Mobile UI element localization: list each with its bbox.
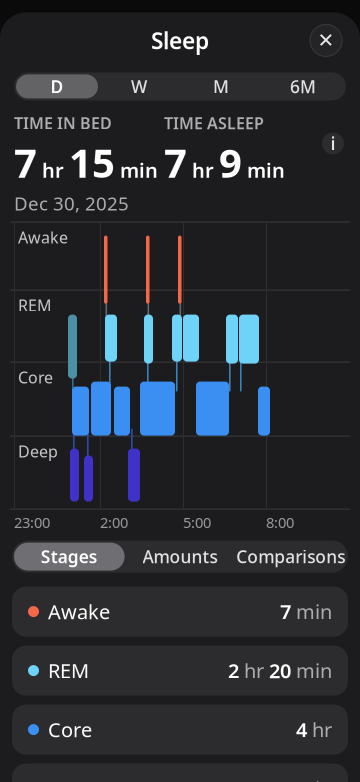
staticText: 15 bbox=[69, 136, 115, 189]
button[interactable]: 6M bbox=[262, 74, 344, 98]
staticText: D bbox=[50, 75, 63, 98]
staticText: min bbox=[291, 657, 332, 684]
staticText: min bbox=[291, 598, 332, 625]
staticText: M bbox=[213, 75, 229, 98]
button[interactable]: Amounts bbox=[125, 543, 235, 571]
staticText: REM bbox=[18, 295, 52, 316]
staticText: Awake bbox=[48, 598, 110, 625]
button[interactable]: Close bbox=[306, 20, 346, 60]
staticText: Awake bbox=[18, 227, 68, 248]
staticText: 4 bbox=[296, 716, 307, 743]
button[interactable]: W bbox=[98, 74, 180, 98]
staticText: hr bbox=[37, 157, 69, 183]
button[interactable]: REM bbox=[12, 646, 348, 696]
staticText: 6M bbox=[290, 75, 316, 98]
staticText: 7 bbox=[14, 136, 37, 189]
staticText: i bbox=[330, 132, 335, 155]
staticText: 8:00 bbox=[266, 513, 294, 532]
button[interactable]: Awake bbox=[12, 587, 348, 637]
staticText: Dec 30, 2025 bbox=[14, 191, 129, 216]
staticText: 2 bbox=[228, 657, 239, 684]
staticText: W bbox=[131, 75, 147, 98]
staticText: min bbox=[242, 157, 285, 183]
button[interactable]: Comparisons bbox=[235, 543, 346, 571]
staticText: hr bbox=[307, 716, 332, 743]
staticText: TIME IN BED bbox=[14, 112, 112, 134]
staticText: min bbox=[115, 157, 158, 183]
staticText: min bbox=[291, 775, 332, 782]
button[interactable]: Information bbox=[316, 112, 350, 160]
staticText: 20 bbox=[264, 657, 291, 684]
staticText: Core bbox=[18, 367, 53, 388]
staticText: ✕ bbox=[317, 29, 334, 52]
button[interactable]: Core bbox=[12, 705, 348, 755]
staticText: 23:00 bbox=[14, 513, 50, 532]
staticText: Core bbox=[48, 716, 92, 743]
button[interactable]: D bbox=[16, 74, 98, 98]
staticText: hr bbox=[239, 657, 264, 684]
staticText: Stages bbox=[41, 545, 98, 568]
staticText: Amounts bbox=[142, 545, 217, 568]
staticText: 7 bbox=[164, 136, 187, 189]
staticText: REM bbox=[48, 657, 89, 684]
staticText: 2:00 bbox=[100, 513, 128, 532]
staticText: 5:00 bbox=[183, 513, 211, 532]
staticText: Deep bbox=[18, 441, 58, 462]
staticText: 7 bbox=[280, 598, 291, 625]
staticText: Sleep bbox=[151, 25, 209, 55]
staticText: hr bbox=[187, 157, 219, 183]
staticText: TIME ASLEEP bbox=[164, 112, 264, 134]
staticText: Comparisons bbox=[236, 545, 345, 568]
button[interactable]: M bbox=[180, 74, 262, 98]
button[interactable]: Stages bbox=[14, 543, 125, 571]
staticText: 9 bbox=[219, 136, 242, 189]
